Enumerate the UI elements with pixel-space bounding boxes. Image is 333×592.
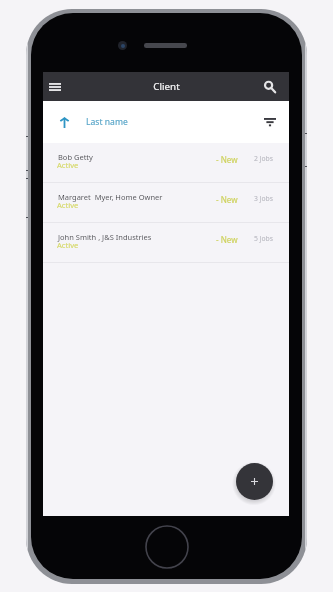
staticText: - New xyxy=(216,194,238,205)
staticText: Margaret Myer, Home Owner xyxy=(58,192,163,202)
button[interactable]: Margaret Myer, Home Owner xyxy=(43,183,289,223)
staticText: 5 Jobs xyxy=(254,234,274,243)
staticText: Last name xyxy=(86,116,128,128)
staticText: Active xyxy=(57,240,79,250)
button[interactable]: John Smith , J&S Industries xyxy=(43,223,289,263)
button[interactable]: Bob Getty xyxy=(43,143,289,183)
staticText: Active xyxy=(57,160,79,170)
button[interactable]: Add client xyxy=(236,463,273,500)
staticText: Bob Getty xyxy=(58,152,93,162)
staticText: - New xyxy=(216,234,238,245)
button[interactable]: Filter xyxy=(251,101,289,143)
button[interactable]: Search xyxy=(251,72,289,101)
staticText: John Smith , J&S Industries xyxy=(58,232,152,242)
staticText: 3 Jobs xyxy=(254,194,274,203)
staticText: - New xyxy=(216,154,238,165)
staticText: 2 Jobs xyxy=(254,154,274,163)
button[interactable]: Menu xyxy=(43,72,67,101)
staticText: Client xyxy=(153,80,180,93)
button[interactable]: Last name xyxy=(43,101,289,143)
staticText: Active xyxy=(57,200,79,210)
